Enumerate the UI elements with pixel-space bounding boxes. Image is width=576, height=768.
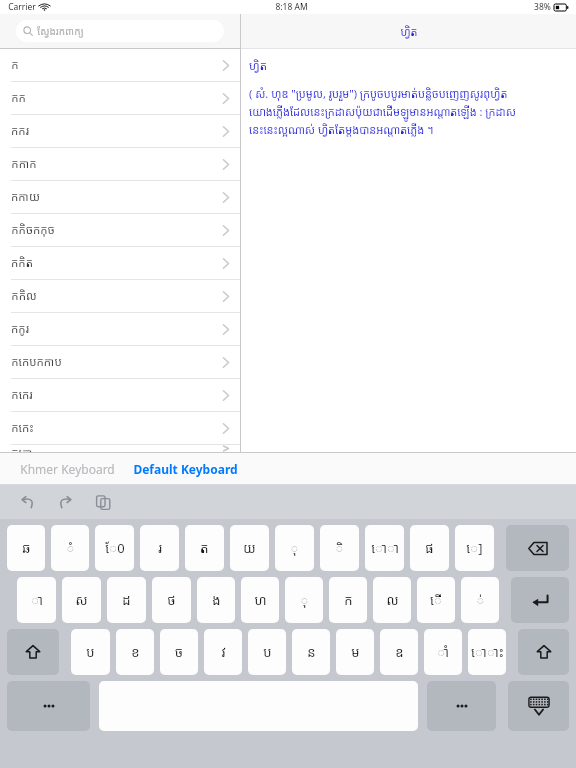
- button[interactable]: Shift: [7, 629, 59, 675]
- button[interactable]: កកេបកកាប: [0, 346, 240, 379]
- staticText: Default Keyboard: [133, 461, 238, 477]
- button[interactable]: កកិត: [0, 247, 240, 280]
- button[interactable]: េ]: [455, 525, 494, 571]
- staticText: ំ: [66, 539, 75, 557]
- staticText: Khmer Keyboard: [20, 461, 115, 477]
- button[interactable]: ក: [329, 577, 367, 623]
- button[interactable]: កកិល: [0, 280, 240, 313]
- staticText: កកិត: [11, 255, 33, 271]
- button[interactable]: កកាក: [0, 148, 240, 181]
- button[interactable]: ល: [373, 577, 411, 623]
- staticText: ហ្វិត: [400, 24, 418, 39]
- button[interactable]: Default Keyboard: [131, 457, 240, 481]
- staticText: ើ: [430, 591, 442, 609]
- button[interactable]: ាំ: [424, 629, 462, 675]
- button[interactable]: កក: [0, 82, 240, 115]
- button[interactable]: More: [427, 681, 496, 731]
- button[interactable]: កករ: [0, 115, 240, 148]
- staticText: ោា: [371, 539, 399, 557]
- staticText: ហ: [254, 591, 267, 609]
- button[interactable]: ថ: [152, 577, 191, 623]
- button[interactable]: Copy: [90, 489, 116, 515]
- button[interactable]: ំ: [51, 525, 89, 571]
- button[interactable]: ោា: [365, 525, 404, 571]
- button[interactable]: ច: [160, 629, 198, 675]
- button[interactable]: ហ: [241, 577, 279, 623]
- staticText: ោាះ: [471, 643, 504, 661]
- button[interactable]: More: [7, 681, 90, 731]
- staticText: ស: [75, 591, 88, 609]
- staticText: ផ: [425, 539, 434, 557]
- staticText: ប: [86, 643, 95, 661]
- button[interactable]: កកូរ: [0, 313, 240, 346]
- button[interactable]: ង: [197, 577, 235, 623]
- button[interactable]: ន: [292, 629, 330, 675]
- button[interactable]: ដ: [107, 577, 146, 623]
- button[interactable]: យ: [230, 525, 269, 571]
- staticText: កកេះ: [11, 420, 34, 436]
- button[interactable]: កកេរ: [0, 379, 240, 412]
- staticText: ក: [11, 57, 19, 73]
- staticText: ខ: [131, 643, 140, 661]
- staticText: កកិល: [11, 288, 37, 304]
- staticText: វ: [221, 643, 226, 661]
- staticText: ឆ: [22, 539, 31, 557]
- button[interactable]: ឧ: [380, 629, 418, 675]
- button[interactable]: Redo: [52, 489, 78, 515]
- staticText: ង: [212, 591, 221, 609]
- staticText: កកិចកកុច: [11, 222, 55, 238]
- staticText: កកេរ: [11, 387, 33, 403]
- button[interactable]: ស: [62, 577, 101, 623]
- button[interactable]: កកេះ: [0, 412, 240, 445]
- button[interactable]: ផ: [410, 525, 449, 571]
- button[interactable]: Khmer Keyboard: [18, 457, 117, 481]
- button[interactable]: ម: [336, 629, 374, 675]
- staticText: ហ្វិត: [249, 58, 267, 74]
- staticText: យោងភ្លើងដែលនេះក្រដាសប៉ុយជាដើមឡូមានអណ្តាត…: [249, 104, 516, 119]
- button[interactable]: កកិចកកុច: [0, 214, 240, 247]
- staticText: កក: [11, 90, 26, 106]
- staticText: ែ0: [105, 539, 125, 557]
- button[interactable]: ស្វែងរកពាក្យ: [16, 20, 224, 42]
- button[interactable]: Return: [511, 577, 569, 623]
- button[interactable]: ឆ: [7, 525, 45, 571]
- button[interactable]: Shift: [518, 629, 569, 675]
- button[interactable]: Hide keyboard: [508, 681, 569, 731]
- button[interactable]: កកាយ: [0, 181, 240, 214]
- button[interactable]: ក: [0, 49, 240, 82]
- button[interactable]: ត: [185, 525, 224, 571]
- staticText: រ: [158, 539, 162, 557]
- button[interactable]: ុ: [275, 525, 314, 571]
- button[interactable]: ប: [71, 629, 110, 675]
- staticText: ច: [175, 643, 183, 661]
- button[interactable]: រ: [140, 525, 179, 571]
- staticText: កកូរ: [11, 321, 29, 337]
- staticText: ម: [351, 643, 360, 661]
- button[interactable]: ប: [248, 629, 286, 675]
- staticText: ស្វែងរកពាក្យ: [37, 24, 84, 38]
- button[interactable]: ែ0: [95, 525, 134, 571]
- staticText: ន: [307, 643, 316, 661]
- button[interactable]: ា: [17, 577, 56, 623]
- staticText: 8:18 AM: [275, 1, 308, 13]
- staticText: កកេបកកាប: [11, 354, 62, 370]
- button[interactable]: ុ: [285, 577, 323, 623]
- button[interactable]: Undo: [14, 489, 40, 515]
- button[interactable]: កកោ: [0, 445, 240, 452]
- staticText: ់: [476, 591, 485, 609]
- button[interactable]: ខ: [116, 629, 154, 675]
- button[interactable]: ើ: [417, 577, 455, 623]
- button[interactable]: វ: [204, 629, 242, 675]
- staticText: ( សំ. ហុឌ "ប្រមូល, រូបរួម") ក្របូចបបូរមា…: [249, 86, 508, 101]
- staticText: េ]: [466, 539, 483, 557]
- button[interactable]: ោាះ: [468, 629, 506, 675]
- button[interactable]: ិ: [320, 525, 359, 571]
- staticText: ប: [263, 643, 272, 661]
- staticText: កកោ: [11, 445, 33, 452]
- staticText: ុ: [290, 539, 299, 557]
- staticText: យ: [243, 539, 256, 557]
- button[interactable]: Backspace: [506, 525, 569, 571]
- staticText: ត: [200, 539, 209, 557]
- button[interactable]: ់: [461, 577, 499, 623]
